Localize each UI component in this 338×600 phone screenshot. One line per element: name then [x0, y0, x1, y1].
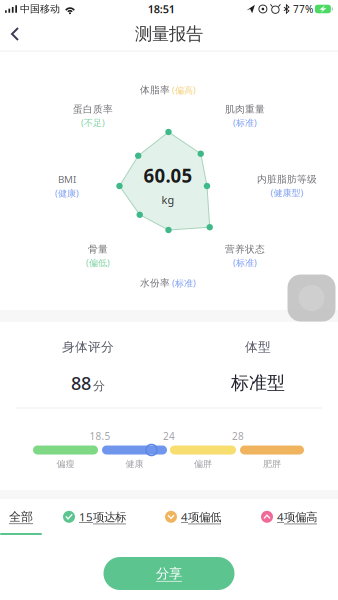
staticText: (标准): [233, 116, 257, 129]
button[interactable]: 4项偏低: [165, 499, 221, 535]
staticText: 蛋白质率: [73, 103, 113, 115]
staticText: (健康型): [270, 186, 303, 199]
staticText: 偏瘦: [56, 458, 74, 470]
staticText: 分: [93, 378, 105, 393]
staticText: 18:51: [148, 2, 175, 16]
staticText: 肥胖: [263, 458, 281, 470]
button[interactable]: 4项偏高: [261, 499, 317, 535]
staticText: BMI: [58, 173, 76, 186]
staticText: 健康: [125, 458, 143, 470]
staticText: 体型: [245, 339, 271, 355]
staticText: 肌肉重量: [225, 103, 265, 115]
staticText: 60.05: [143, 163, 192, 188]
staticText: 身体评分: [62, 339, 114, 355]
staticText: 4项偏高: [277, 509, 317, 525]
staticText: 水份率: [140, 277, 170, 289]
staticText: 15项达标: [79, 509, 126, 525]
staticText: 18.5: [89, 429, 110, 443]
staticText: 中国移动: [20, 3, 60, 15]
staticText: kg: [161, 192, 174, 207]
button[interactable]: 全部: [0, 499, 42, 534]
staticText: 体脂率: [140, 84, 170, 96]
staticText: 标准型: [231, 372, 285, 394]
staticText: 内脏脂肪等级: [257, 173, 317, 185]
staticText: (不足): [81, 116, 105, 129]
staticText: 全部: [9, 509, 33, 524]
staticText: (健康): [55, 187, 79, 199]
staticText: 偏胖: [194, 458, 212, 470]
staticText: 24: [163, 429, 175, 443]
staticText: (偏低): [86, 256, 110, 269]
staticText: 28: [232, 429, 244, 443]
staticText: 4项偏低: [181, 509, 221, 525]
staticText: (标准): [233, 256, 257, 269]
button[interactable]: 分享: [103, 557, 234, 590]
staticText: 骨量: [88, 243, 108, 255]
button[interactable]: Back: [0, 19, 30, 49]
button[interactable]: Assistive Touch: [287, 274, 335, 321]
staticText: 77%: [293, 2, 313, 16]
staticText: 测量报告: [135, 23, 203, 45]
staticText: 分享: [156, 565, 182, 582]
staticText: (偏高): [172, 84, 196, 96]
button[interactable]: 15项达标: [63, 499, 126, 535]
staticText: 88: [71, 371, 91, 395]
staticText: 营养状态: [225, 243, 265, 255]
staticText: (标准): [172, 277, 196, 289]
